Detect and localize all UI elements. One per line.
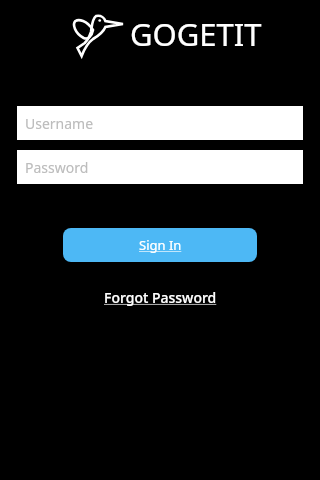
button[interactable]: Username [17,106,303,140]
button[interactable]: Password [17,150,303,184]
button[interactable]: Forgot Password [98,286,223,309]
staticText: Forgot Password [104,288,217,307]
staticText: Password [25,158,89,177]
staticText: Sign In [139,236,182,254]
staticText: Username [25,114,94,133]
button[interactable]: Sign In [63,228,257,262]
staticText: GOGETIT [130,13,262,55]
